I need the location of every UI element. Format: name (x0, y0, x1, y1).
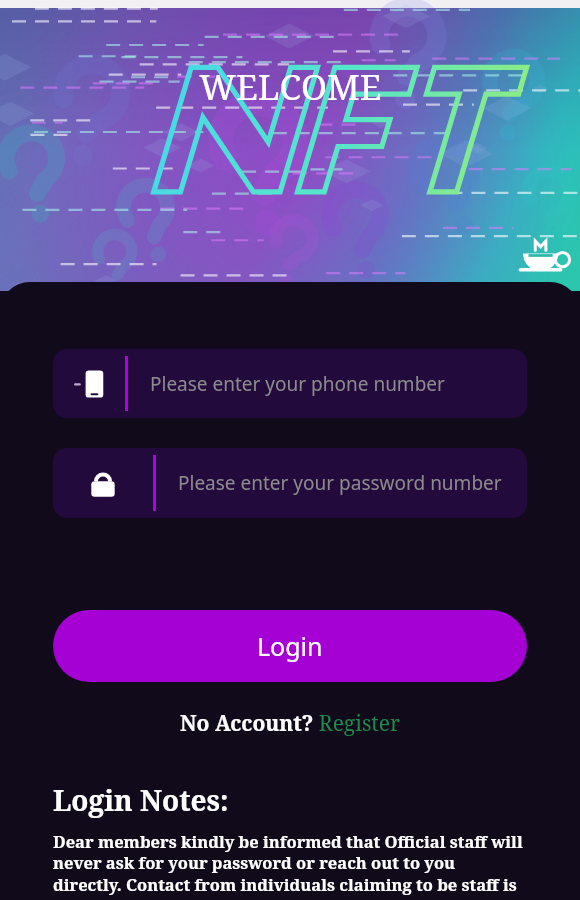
staticText: Please enter your password number (178, 470, 502, 496)
staticText: No Account? Register (180, 709, 400, 738)
button[interactable]: Please enter your password number (53, 448, 527, 518)
button[interactable]: Login (53, 610, 527, 682)
button[interactable]: Please enter your phone number (53, 349, 527, 418)
staticText: Dear members kindly be informed that Off… (53, 830, 527, 900)
staticText: WELCOME (199, 63, 382, 111)
staticText: Please enter your phone number (150, 371, 445, 397)
staticText: Login Notes: (53, 781, 229, 819)
staticText: Login (257, 629, 323, 663)
button[interactable]: No Account? Register (180, 709, 400, 738)
